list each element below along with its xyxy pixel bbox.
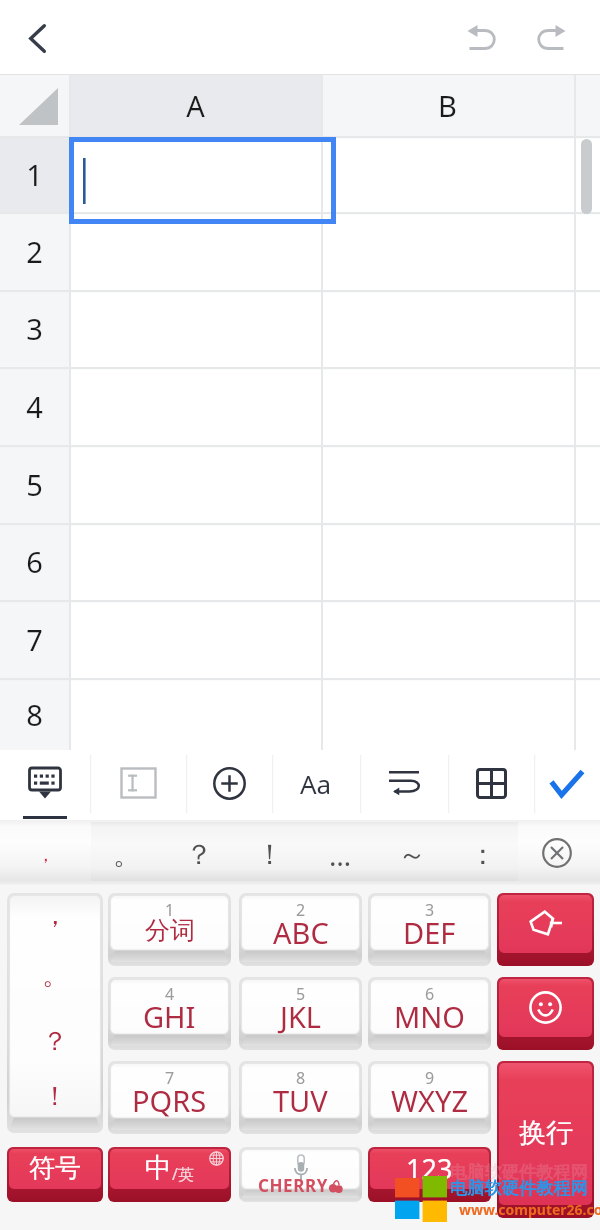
staticText: 7	[165, 1067, 175, 1089]
staticText: /英	[172, 1163, 194, 1185]
staticText: MNO	[394, 997, 465, 1036]
staticText: Aa	[300, 766, 332, 801]
button[interactable]: 2	[239, 893, 362, 966]
button[interactable]: Hide keyboard	[0, 750, 90, 820]
staticText: ABC	[273, 913, 329, 952]
staticText: CHERRY	[258, 1174, 328, 1197]
button[interactable]: 7	[108, 1061, 231, 1134]
staticText: 3	[425, 899, 435, 921]
button[interactable]: Chinese English toggle	[108, 1147, 231, 1202]
staticText: B	[438, 86, 457, 125]
staticText: GHI	[143, 997, 196, 1036]
button[interactable]: 8	[239, 1061, 362, 1134]
button[interactable]: Enter	[497, 1061, 594, 1218]
button[interactable]: Undo	[455, 11, 509, 65]
button[interactable]: 5	[239, 977, 362, 1050]
staticText: 5	[296, 983, 306, 1005]
staticText: 4	[26, 387, 43, 426]
button[interactable]: 9	[368, 1061, 491, 1134]
button[interactable]: 1	[108, 893, 231, 966]
staticText: 2	[296, 899, 306, 921]
staticText: 电脑软硬件教程网	[450, 1178, 588, 1199]
button[interactable]: 。	[91, 822, 163, 881]
button[interactable]: Insert	[186, 750, 272, 820]
staticText: PQRS	[132, 1081, 207, 1120]
staticText: 符号	[29, 1152, 81, 1185]
staticText: ：	[469, 837, 497, 872]
button[interactable]: Done	[534, 750, 600, 820]
staticText: ？	[42, 1025, 68, 1058]
staticText: ，	[42, 899, 68, 932]
button[interactable]: ？	[163, 822, 234, 881]
staticText: 换行	[519, 1116, 573, 1150]
staticText: 123	[406, 1150, 453, 1187]
button[interactable]: …	[305, 822, 376, 881]
button[interactable]: Emoji	[497, 977, 594, 1050]
staticText: A	[186, 86, 205, 125]
staticText: www.computer26.com	[459, 1200, 600, 1219]
staticText: 3	[26, 309, 43, 348]
staticText: 1	[26, 155, 43, 194]
staticText: 分词	[145, 915, 195, 946]
staticText: 1	[165, 899, 175, 921]
staticText: 4	[165, 983, 175, 1005]
button[interactable]: Text box	[90, 750, 186, 820]
staticText: 电脑软硬件教程网	[450, 1162, 588, 1183]
staticText: 8	[26, 695, 43, 734]
button[interactable]: 3	[368, 893, 491, 966]
button[interactable]: Symbols	[7, 1147, 103, 1202]
staticText: ！	[256, 837, 284, 872]
button[interactable]: Wrap text	[360, 750, 448, 820]
button[interactable]: Redo	[524, 11, 578, 65]
staticText: 。	[113, 837, 141, 872]
button[interactable]: 6	[368, 977, 491, 1050]
button[interactable]: ，	[10, 820, 80, 885]
staticText: ～	[398, 837, 426, 872]
button[interactable]: Numbers	[368, 1147, 491, 1202]
button[interactable]: Close keyboard	[534, 830, 580, 876]
button[interactable]: Back	[8, 9, 66, 67]
staticText: 7	[26, 620, 43, 659]
button[interactable]: ：	[447, 822, 518, 881]
staticText: TUV	[273, 1081, 328, 1120]
staticText: …	[329, 836, 352, 874]
staticText: WXYZ	[391, 1081, 468, 1120]
staticText: ！	[42, 1080, 68, 1113]
button[interactable]: Table	[448, 750, 534, 820]
staticText: 2	[26, 232, 43, 271]
staticText: 9	[425, 1067, 435, 1089]
staticText: 6	[26, 542, 43, 581]
button[interactable]: Backspace	[497, 893, 594, 966]
staticText: ？	[185, 837, 213, 872]
button[interactable]: ！	[234, 822, 305, 881]
staticText: 5	[26, 465, 43, 504]
staticText: JKL	[280, 997, 322, 1036]
staticText: 6	[425, 983, 435, 1005]
button[interactable]: 4	[108, 977, 231, 1050]
staticText: DEF	[403, 913, 456, 952]
button[interactable]: ～	[376, 822, 447, 881]
staticText: 中	[145, 1151, 172, 1185]
staticText: 。	[42, 959, 68, 992]
button[interactable]: CHERRY	[239, 1147, 362, 1202]
staticText: 8	[296, 1067, 306, 1089]
button[interactable]: Format text	[272, 750, 360, 820]
staticText: ，	[36, 843, 55, 867]
button[interactable]: ，	[7, 893, 103, 1133]
